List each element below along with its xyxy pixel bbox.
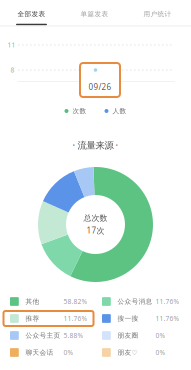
staticText: 人数 (112, 107, 126, 115)
staticText: 搜一搜 (117, 314, 138, 323)
staticText: 用户统计 (143, 10, 171, 18)
button[interactable]: 聊天会话 (3, 345, 93, 360)
staticText: · 流量来源 · (72, 139, 118, 151)
staticText: 58.82% (63, 297, 87, 306)
staticText: 0% (63, 348, 73, 357)
staticText: 总次数 (83, 213, 107, 223)
staticText: 推荐 (25, 314, 39, 323)
button[interactable]: 公众号消息 (95, 294, 185, 309)
staticText: 朋友♡ (117, 348, 137, 357)
staticText: 17次 (86, 225, 104, 236)
staticText: 聊天会话 (25, 348, 53, 357)
staticText: 朋友圈 (117, 331, 138, 340)
button[interactable]: 全部发表 (0, 0, 63, 28)
staticText: 其他 (25, 297, 39, 306)
staticText: 0% (155, 348, 165, 357)
button[interactable]: 单篇发表 (63, 0, 126, 28)
button[interactable]: 用户统计 (126, 0, 189, 28)
button[interactable]: 其他 (3, 294, 93, 309)
staticText: 0% (155, 331, 165, 340)
staticText: 11.76% (63, 314, 87, 323)
staticText: 11.76% (155, 297, 179, 306)
button[interactable]: 朋友圈 (95, 328, 185, 343)
staticText: 09/26 (88, 82, 111, 92)
staticText: 公众号消息 (117, 297, 152, 306)
staticText: 次数 (72, 107, 86, 115)
staticText: 单篇发表 (80, 10, 108, 18)
staticText: 公众号主页 (25, 331, 60, 340)
staticText: 5.88% (63, 331, 83, 340)
button[interactable]: 公众号主页 (3, 328, 93, 343)
staticText: 8 (10, 66, 14, 74)
button[interactable]: 推荐 (3, 311, 93, 326)
button[interactable]: 朋友♡ (95, 345, 185, 360)
staticText: 全部发表 (17, 10, 45, 18)
staticText: 11 (7, 41, 15, 49)
staticText: 11.76% (155, 314, 179, 323)
button[interactable]: 搜一搜 (95, 311, 185, 326)
